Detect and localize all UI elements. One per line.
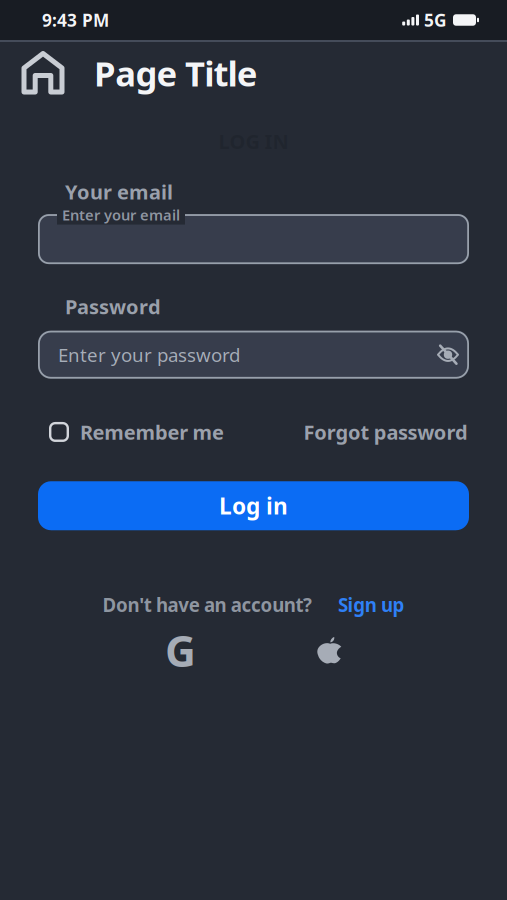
staticText: Sign up (338, 592, 405, 617)
button[interactable]: Sign up (338, 592, 405, 617)
button[interactable]: Log in (38, 481, 469, 530)
staticText: Enter your password (58, 342, 240, 367)
staticText: 5G (424, 8, 447, 31)
staticText: G (165, 622, 196, 679)
button[interactable]: Enter your password (38, 331, 469, 379)
button[interactable] (21, 51, 65, 95)
staticText: Forgot password (304, 419, 468, 445)
staticText: Don't have an account? (102, 592, 312, 617)
button[interactable]: Remember me (49, 419, 224, 445)
button[interactable]: Forgot password (304, 419, 468, 445)
button[interactable]: Enter your email (38, 214, 469, 264)
staticText: 9:43 PM (42, 8, 109, 31)
staticText: Page Title (94, 50, 258, 96)
button[interactable] (318, 636, 342, 664)
button[interactable]: G (165, 622, 196, 679)
staticText: Remember me (80, 419, 224, 445)
staticText: Enter your email (62, 205, 180, 225)
staticText: Log in (219, 491, 288, 521)
staticText: Your email (65, 179, 173, 205)
staticText: Password (65, 293, 161, 320)
